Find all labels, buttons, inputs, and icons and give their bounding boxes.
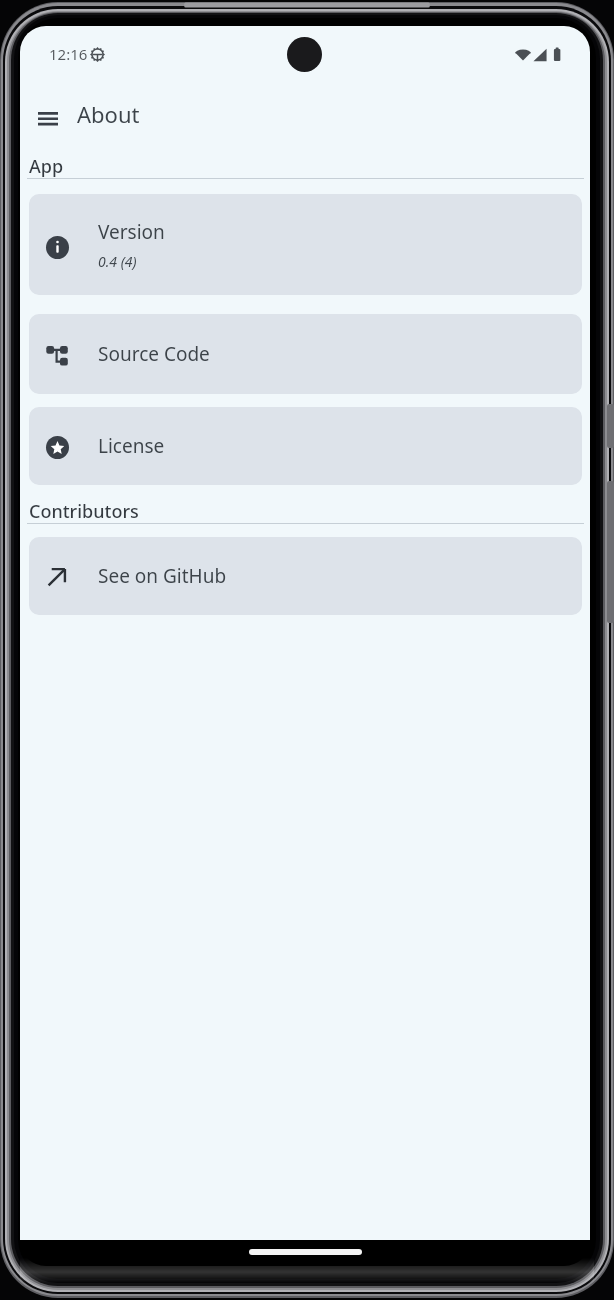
staticText: App — [29, 154, 64, 179]
button[interactable]: Version — [29, 194, 582, 295]
button[interactable]: Open navigation menu — [25, 98, 71, 144]
staticText: Contributors — [29, 499, 139, 524]
staticText: 0.4 (4) — [98, 252, 137, 271]
staticText: See on GitHub — [98, 563, 227, 589]
staticText: Version — [98, 219, 165, 245]
button[interactable]: See on GitHub — [29, 537, 582, 615]
staticText: 12:16 — [49, 44, 88, 64]
button[interactable]: License — [29, 407, 582, 485]
staticText: Source Code — [98, 341, 210, 367]
staticText: About — [77, 99, 140, 129]
button[interactable]: Source Code — [29, 314, 582, 394]
staticText: License — [98, 433, 165, 459]
